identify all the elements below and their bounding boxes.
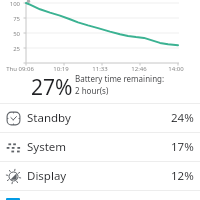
staticText: Battery time remaining: — [75, 73, 165, 84]
staticText: Display — [27, 168, 67, 184]
staticText: 27% — [31, 73, 73, 102]
staticText: 14:00 — [156, 65, 196, 73]
staticText: Standby — [27, 110, 71, 126]
button[interactable]: Standby — [0, 104, 200, 132]
staticText: Thu 09:06 — [0, 65, 40, 73]
staticText: 11:33 — [80, 65, 120, 73]
staticText: System — [27, 139, 67, 155]
staticText: 25 — [0, 45, 20, 53]
staticText: 2 hour(s) — [75, 85, 109, 96]
button[interactable]: Display — [0, 162, 200, 190]
button[interactable]: Battery usage item — [0, 191, 200, 200]
staticText: 12:46 — [119, 65, 159, 73]
staticText: 10:19 — [41, 65, 81, 73]
staticText: 17% — [171, 139, 194, 155]
other: Battery usage item — [6, 198, 20, 200]
staticText: 12% — [171, 168, 194, 184]
staticText: 100 — [0, 0, 20, 8]
button[interactable]: System — [0, 133, 200, 161]
staticText: 50 — [0, 30, 20, 38]
staticText: 75 — [0, 15, 20, 23]
staticText: 24% — [171, 110, 194, 126]
